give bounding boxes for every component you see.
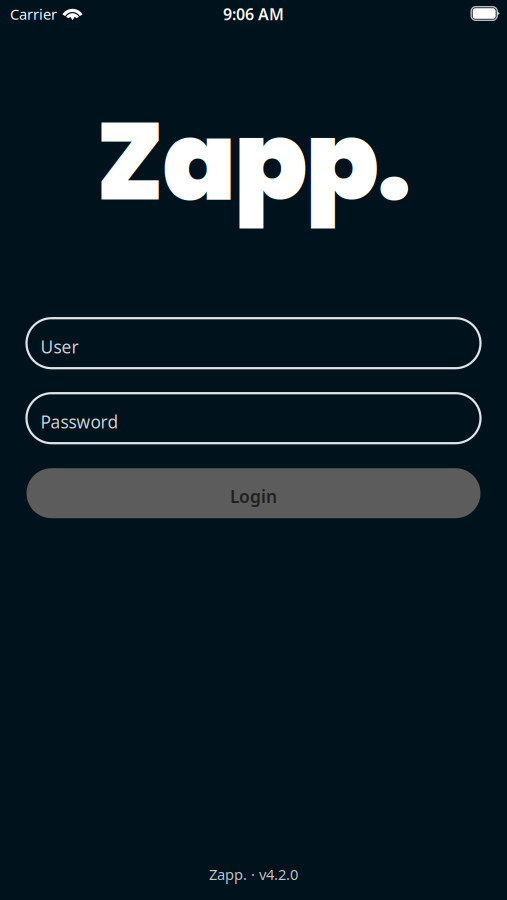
staticText: Password (40, 410, 118, 433)
staticText: Login (230, 485, 277, 508)
button[interactable]: User (26, 318, 480, 368)
staticText: Carrier (10, 4, 57, 24)
staticText: Zapp. (96, 86, 411, 237)
button[interactable]: Password (26, 393, 480, 443)
staticText: 9:06 AM (223, 3, 284, 25)
staticText: Zapp. · v4.2.0 (209, 864, 298, 884)
button[interactable]: Login (26, 468, 480, 518)
staticText: User (40, 335, 78, 358)
